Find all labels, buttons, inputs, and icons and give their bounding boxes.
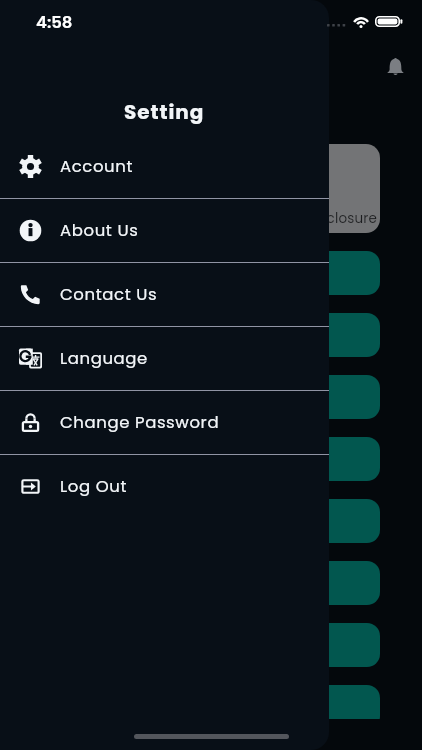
staticText: About Us <box>60 219 139 242</box>
staticText: Contact Us <box>60 283 158 306</box>
button[interactable]: Log Out <box>0 455 329 518</box>
staticText: Account <box>60 155 134 178</box>
button[interactable]: Account <box>0 135 329 198</box>
staticText: Disclosure <box>306 209 378 228</box>
button[interactable] <box>22 313 380 357</box>
button[interactable] <box>22 437 380 481</box>
button[interactable] <box>22 685 380 719</box>
button[interactable]: Change Password <box>0 391 329 454</box>
button[interactable]: About Us <box>0 199 329 262</box>
staticText: Log Out <box>60 475 127 498</box>
button[interactable] <box>22 499 380 543</box>
staticText: 4:58 <box>36 11 73 34</box>
staticText: Setting <box>124 98 205 126</box>
button[interactable]: Language <box>0 327 329 390</box>
staticText: Change Password <box>60 411 220 434</box>
button[interactable]: Disclosure <box>22 144 380 233</box>
button[interactable] <box>22 375 380 419</box>
button[interactable]: Contact Us <box>0 263 329 326</box>
button[interactable]: Notifications <box>384 56 407 78</box>
button[interactable] <box>22 623 380 667</box>
button[interactable] <box>22 561 380 605</box>
staticText: Language <box>60 347 148 370</box>
button[interactable] <box>22 251 380 295</box>
